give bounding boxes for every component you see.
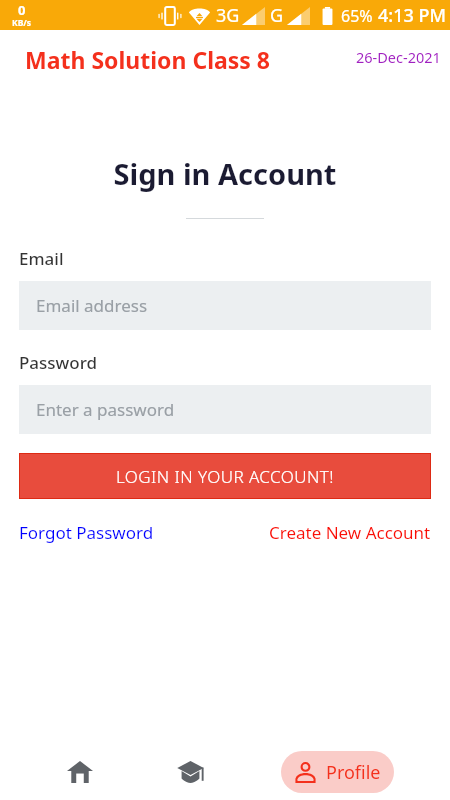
button[interactable]: Create New Account [269,521,431,544]
button[interactable]: Email address [19,281,431,330]
staticText: 65% [341,5,373,27]
button[interactable]: Enter a password [19,385,431,434]
button[interactable]: Profile [281,751,394,793]
staticText: 3G [216,3,240,28]
staticText: Profile [326,760,381,785]
staticText: G [270,3,284,28]
staticText: Enter a password [36,398,175,421]
staticText: 4:13 PM [378,3,446,28]
button[interactable]: Courses [165,750,215,794]
staticText: Email [19,247,64,270]
staticText: 0 [18,1,26,19]
staticText: LOGIN IN YOUR ACCOUNT! [116,465,334,488]
button[interactable]: Home [55,750,105,794]
staticText: KB/s [12,17,32,29]
staticText: Email address [36,294,148,317]
button[interactable]: LOGIN IN YOUR ACCOUNT! [20,454,430,498]
staticText: 26-Dec-2021 [356,47,441,67]
button[interactable]: Forgot Password [19,521,154,544]
staticText: Math Solution Class 8 [25,44,271,75]
staticText: Password [19,351,98,374]
staticText: Sign in Account [0,154,450,193]
